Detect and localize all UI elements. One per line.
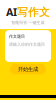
staticText: 写作文: [17, 5, 50, 19]
staticText: 请输入你的作文题目: [9, 42, 45, 47]
staticText: AI: [6, 5, 17, 19]
staticText: 作文题目: [9, 34, 25, 39]
button[interactable]: 开始生成: [10, 64, 46, 74]
staticText: 智能写作 一键生成: [11, 20, 44, 25]
staticText: 开始生成: [18, 66, 38, 72]
